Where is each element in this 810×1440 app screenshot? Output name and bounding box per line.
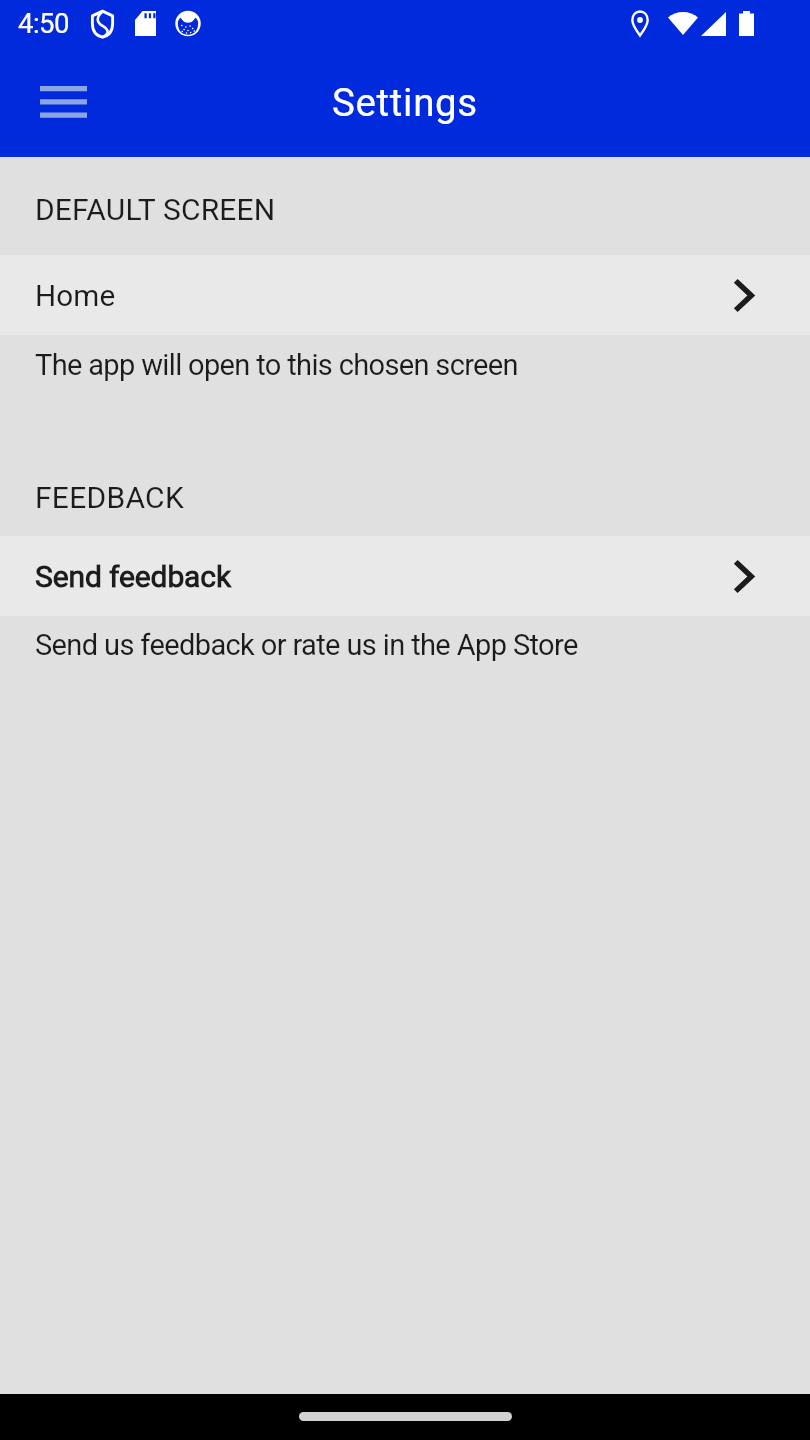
staticText: FEEDBACK [35,480,184,515]
staticText: 4:50 [18,7,70,39]
button[interactable]: Home gesture handle [299,1412,512,1421]
staticText: DEFAULT SCREEN [35,192,276,227]
staticText: Send us feedback or rate us in the App S… [35,628,578,662]
staticText: Send feedback [35,559,231,594]
staticText: The app will open to this chosen screen [35,348,518,382]
button[interactable]: Send feedback [0,536,810,616]
button[interactable]: Home [0,255,810,335]
button[interactable]: Open navigation drawer [24,67,102,137]
staticText: Settings [332,80,478,125]
staticText: Home [35,278,116,313]
